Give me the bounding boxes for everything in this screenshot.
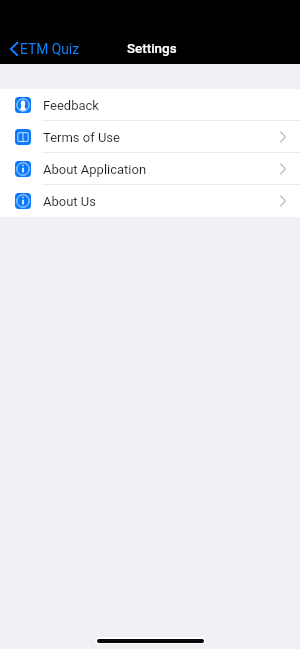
button[interactable]: Feedback [0,89,300,121]
button[interactable]: About Application [0,153,300,185]
staticText: Feedback [43,98,99,113]
staticText: About Us [43,194,96,209]
button[interactable]: Terms of Use [0,121,300,153]
staticText: Settings [127,41,177,57]
button[interactable]: About Us [0,185,300,217]
button[interactable]: Back to ETM Quiz [0,38,87,60]
staticText: Terms of Use [43,130,120,145]
staticText: About Application [43,162,147,177]
staticText: ETM Quiz [20,41,79,57]
